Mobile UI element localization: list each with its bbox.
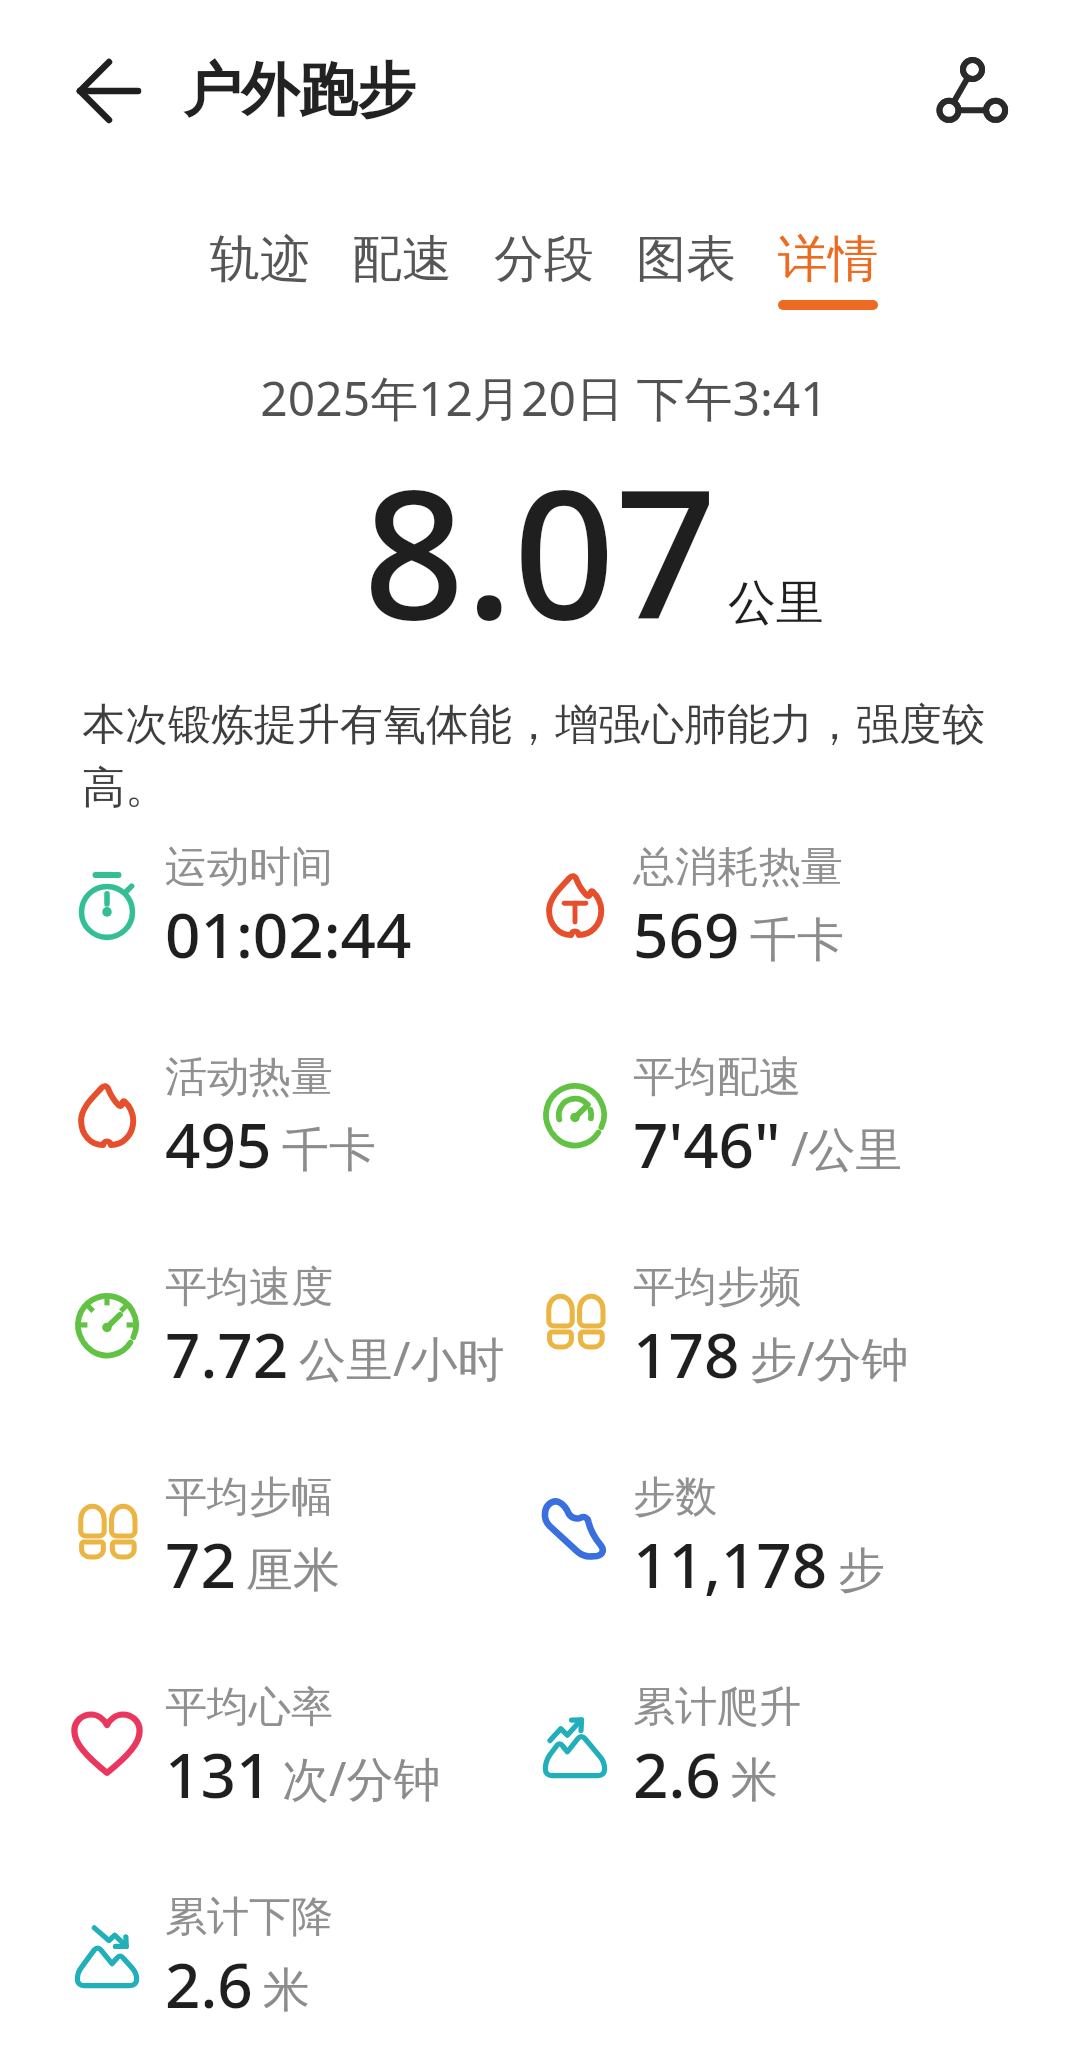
staticText: 配速	[352, 228, 452, 291]
staticText: 2.6	[633, 1732, 721, 1816]
staticText: 72	[165, 1522, 236, 1606]
button[interactable]: 详情	[778, 228, 878, 310]
staticText: 步	[838, 1541, 885, 1600]
staticText: 户外跑步	[183, 54, 415, 127]
staticText: 步数	[633, 1471, 717, 1524]
staticText: /公里	[791, 1116, 903, 1180]
staticText: 累计爬升	[633, 1681, 801, 1734]
button[interactable]: 轨迹	[210, 228, 310, 310]
staticText: 分段	[494, 228, 594, 291]
staticText: 活动热量	[165, 1051, 333, 1104]
staticText: 米	[263, 1961, 310, 2020]
staticText: 千卡	[282, 1121, 376, 1180]
staticText: 累计下降	[165, 1891, 333, 1944]
staticText: 详情	[778, 228, 878, 291]
button[interactable]: 分段	[494, 228, 594, 310]
button[interactable]	[922, 41, 1022, 141]
button[interactable]: 图表	[636, 228, 736, 310]
staticText: 图表	[636, 228, 736, 291]
staticText: 2.6	[165, 1942, 253, 2026]
staticText: 公里	[728, 573, 824, 633]
staticText: 轨迹	[210, 228, 310, 291]
staticText: 01:02:44	[165, 892, 412, 976]
staticText: 本次锻炼提升有氧体能，增强心肺能力，强度较	[82, 698, 985, 752]
staticText: 7.72	[165, 1312, 289, 1396]
staticText: 步/分钟	[750, 1326, 909, 1390]
staticText: 次/分钟	[282, 1746, 441, 1810]
staticText: 总消耗热量	[633, 841, 843, 894]
staticText: 千卡	[750, 911, 844, 970]
staticText: 8.07	[0, 429, 1080, 671]
staticText: 平均心率	[165, 1681, 333, 1734]
staticText: 2025年12月20日 下午3:41	[4, 365, 1080, 431]
staticText: 米	[731, 1751, 778, 1810]
staticText: 高。	[82, 761, 168, 815]
staticText: 平均速度	[165, 1261, 333, 1314]
staticText: 7'46"	[633, 1102, 781, 1186]
staticText: 178	[633, 1312, 740, 1396]
staticText: 平均步幅	[165, 1471, 333, 1524]
staticText: 569	[633, 892, 740, 976]
staticText: 运动时间	[165, 841, 333, 894]
button[interactable]: 配速	[352, 228, 452, 310]
staticText: 公里/小时	[299, 1326, 505, 1390]
staticText: 平均配速	[633, 1051, 801, 1104]
staticText: 11,178	[633, 1522, 828, 1606]
button[interactable]	[58, 43, 154, 139]
staticText: 平均步频	[633, 1261, 801, 1314]
staticText: 厘米	[246, 1541, 340, 1600]
staticText: 131	[165, 1732, 272, 1816]
staticText: 495	[165, 1102, 272, 1186]
